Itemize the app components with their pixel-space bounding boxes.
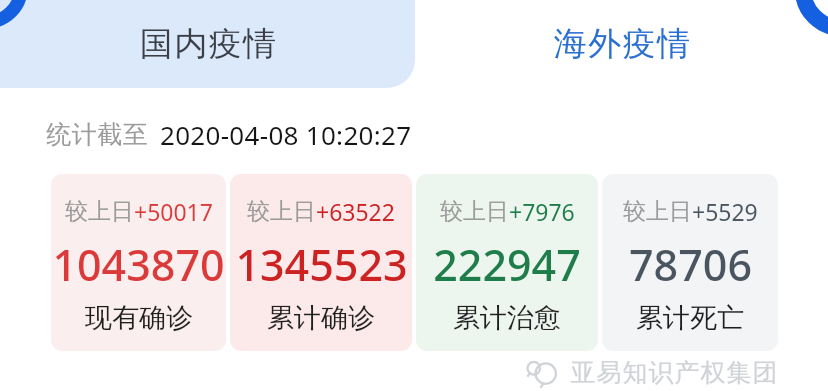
staticText: 78706 xyxy=(629,235,752,294)
staticText: +5529 xyxy=(692,196,758,227)
staticText: 累计治愈 xyxy=(453,301,561,335)
staticText: 较上日 xyxy=(65,197,134,226)
staticText: 222947 xyxy=(433,235,581,294)
staticText: +63522 xyxy=(316,196,395,227)
staticText: 国内疫情 xyxy=(139,23,277,65)
staticText: 较上日 xyxy=(247,197,316,226)
button[interactable]: 较上日 xyxy=(230,174,412,351)
staticText: 亚易知识产权集团 xyxy=(570,357,778,388)
staticText: 累计确诊 xyxy=(267,301,375,335)
staticText: 1043870 xyxy=(52,235,225,294)
staticText: 海外疫情 xyxy=(553,23,691,65)
button[interactable]: 较上日 xyxy=(51,174,226,351)
staticText: 较上日 xyxy=(623,197,692,226)
button[interactable]: 国内疫情 xyxy=(0,0,415,88)
staticText: 2020-04-08 10:20:27 xyxy=(160,117,412,152)
staticText: +7976 xyxy=(509,196,575,227)
staticText: 统计截至 xyxy=(46,119,148,150)
staticText: 现有确诊 xyxy=(85,301,193,335)
staticText: 1345523 xyxy=(235,235,408,294)
staticText: +50017 xyxy=(134,196,213,227)
button[interactable]: 较上日 xyxy=(416,174,598,351)
staticText: 累计死亡 xyxy=(636,301,744,335)
button[interactable]: 较上日 xyxy=(602,174,778,351)
staticText: 较上日 xyxy=(440,197,509,226)
button[interactable]: 海外疫情 xyxy=(415,0,828,88)
